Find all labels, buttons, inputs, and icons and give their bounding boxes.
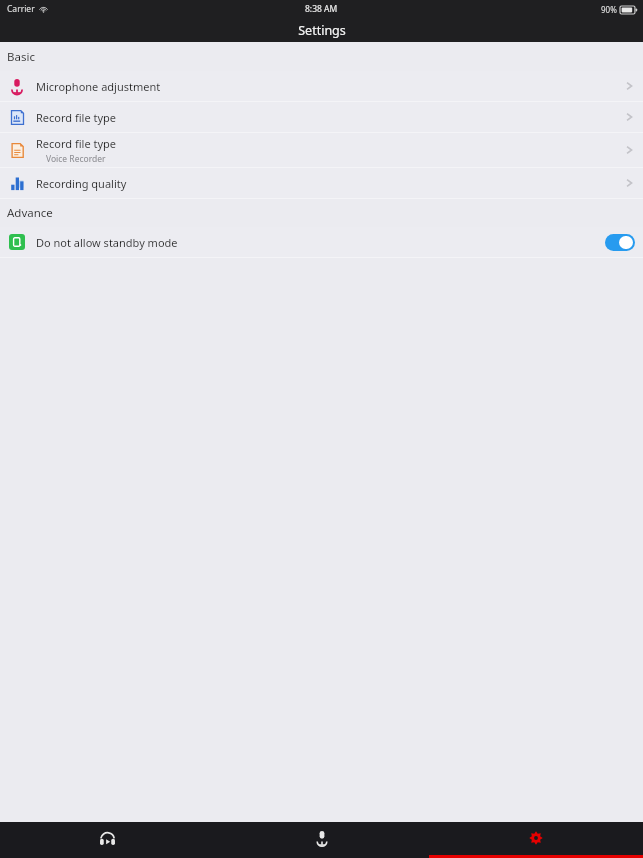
staticText: Recording quality <box>36 176 127 191</box>
button[interactable]: Record <box>215 822 429 858</box>
button[interactable]: Record file type <box>0 133 643 167</box>
button[interactable]: Microphone adjustment <box>0 71 643 101</box>
button[interactable]: Settings <box>429 822 643 858</box>
staticText: Record file type <box>36 136 117 151</box>
button[interactable]: Recording quality <box>0 168 643 198</box>
button[interactable]: Do not allow standby mode toggle <box>605 234 635 251</box>
staticText: Basic <box>7 49 35 65</box>
button[interactable]: Record file type <box>0 102 643 132</box>
staticText: 90% <box>601 4 617 15</box>
button[interactable]: Play <box>0 822 215 858</box>
staticText: Record file type <box>36 110 117 125</box>
staticText: Advance <box>7 205 53 221</box>
staticText: Carrier <box>7 3 35 15</box>
staticText: Voice Recorder <box>46 153 106 165</box>
staticText: Do not allow standby mode <box>36 235 605 250</box>
staticText: Microphone adjustment <box>36 79 161 94</box>
staticText: 8:38 AM <box>305 3 338 15</box>
button[interactable]: Do not allow standby mode <box>0 227 643 257</box>
staticText: Settings <box>298 22 346 39</box>
